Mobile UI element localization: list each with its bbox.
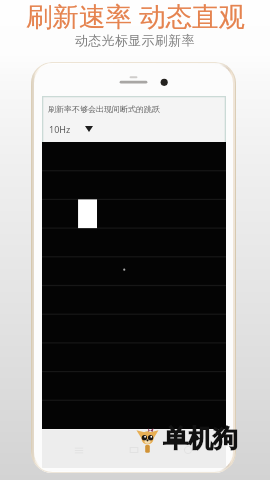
staticText: 动态光标显示刷新率 [75,32,195,48]
staticText: 10Hz [49,123,71,135]
button[interactable]: Home [124,441,144,459]
staticText: 刷新速率 动态直观 [26,0,245,34]
button[interactable]: Back [178,441,198,459]
staticText: 刷新率不够会出现间断式的跳跃 [48,104,160,114]
staticText: 单机狗 [163,423,238,454]
